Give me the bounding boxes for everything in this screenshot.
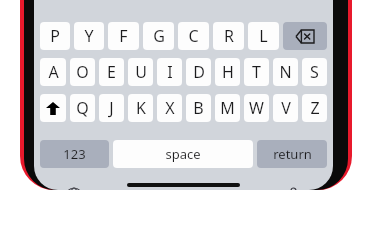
button[interactable]: J — [99, 94, 124, 122]
staticText: R — [224, 25, 234, 47]
staticText: F — [119, 25, 128, 47]
button[interactable]: D — [186, 58, 211, 86]
button[interactable]: S — [302, 58, 327, 86]
staticText: X — [165, 97, 175, 119]
staticText: return — [273, 145, 312, 163]
button[interactable]: Z — [302, 94, 327, 122]
staticText: S — [310, 61, 319, 83]
button[interactable]: Dictate — [281, 184, 305, 190]
staticText: Q — [76, 97, 89, 119]
button[interactable]: L — [248, 22, 279, 50]
staticText: D — [193, 61, 205, 83]
button[interactable]: F — [108, 22, 139, 50]
button[interactable]: Y — [74, 22, 104, 50]
staticText: N — [279, 61, 292, 83]
button[interactable]: C — [178, 22, 209, 50]
staticText: C — [188, 25, 199, 47]
staticText: V — [281, 97, 291, 119]
button[interactable]: Switch keyboard — [62, 184, 86, 190]
staticText: H — [222, 61, 234, 83]
staticText: T — [252, 61, 261, 83]
staticText: L — [259, 25, 268, 47]
button[interactable]: G — [143, 22, 174, 50]
staticText: 123 — [63, 145, 86, 163]
button[interactable]: E — [99, 58, 124, 86]
button[interactable]: space — [113, 140, 253, 168]
staticText: M — [220, 97, 235, 119]
staticText: G — [153, 25, 165, 47]
staticText: Z — [310, 97, 320, 119]
staticText: J — [109, 97, 114, 119]
staticText: Y — [84, 25, 94, 47]
staticText: I — [167, 61, 173, 83]
button[interactable]: Backspace — [283, 22, 327, 50]
button[interactable]: B — [186, 94, 211, 122]
button[interactable]: Q — [70, 94, 95, 122]
button[interactable]: M — [215, 94, 240, 122]
staticText: W — [249, 97, 264, 119]
staticText: space — [165, 145, 201, 163]
button[interactable]: X — [157, 94, 182, 122]
button[interactable]: R — [213, 22, 244, 50]
button[interactable]: U — [128, 58, 153, 86]
button[interactable]: T — [244, 58, 269, 86]
staticText: B — [193, 97, 204, 119]
button[interactable]: V — [273, 94, 298, 122]
button[interactable]: 123 — [40, 140, 109, 168]
staticText: O — [76, 61, 89, 83]
button[interactable]: return — [257, 140, 327, 168]
button[interactable]: W — [244, 94, 269, 122]
button[interactable]: K — [128, 94, 153, 122]
button[interactable]: O — [70, 58, 95, 86]
staticText: E — [107, 61, 116, 83]
staticText: K — [136, 97, 146, 119]
staticText: P — [50, 25, 60, 47]
button[interactable]: I — [157, 58, 182, 86]
button[interactable]: Shift — [40, 94, 66, 122]
button[interactable]: N — [273, 58, 298, 86]
button[interactable]: H — [215, 58, 240, 86]
staticText: A — [48, 61, 59, 83]
button[interactable]: A — [40, 58, 66, 86]
staticText: U — [135, 61, 147, 83]
button[interactable]: P — [40, 22, 70, 50]
